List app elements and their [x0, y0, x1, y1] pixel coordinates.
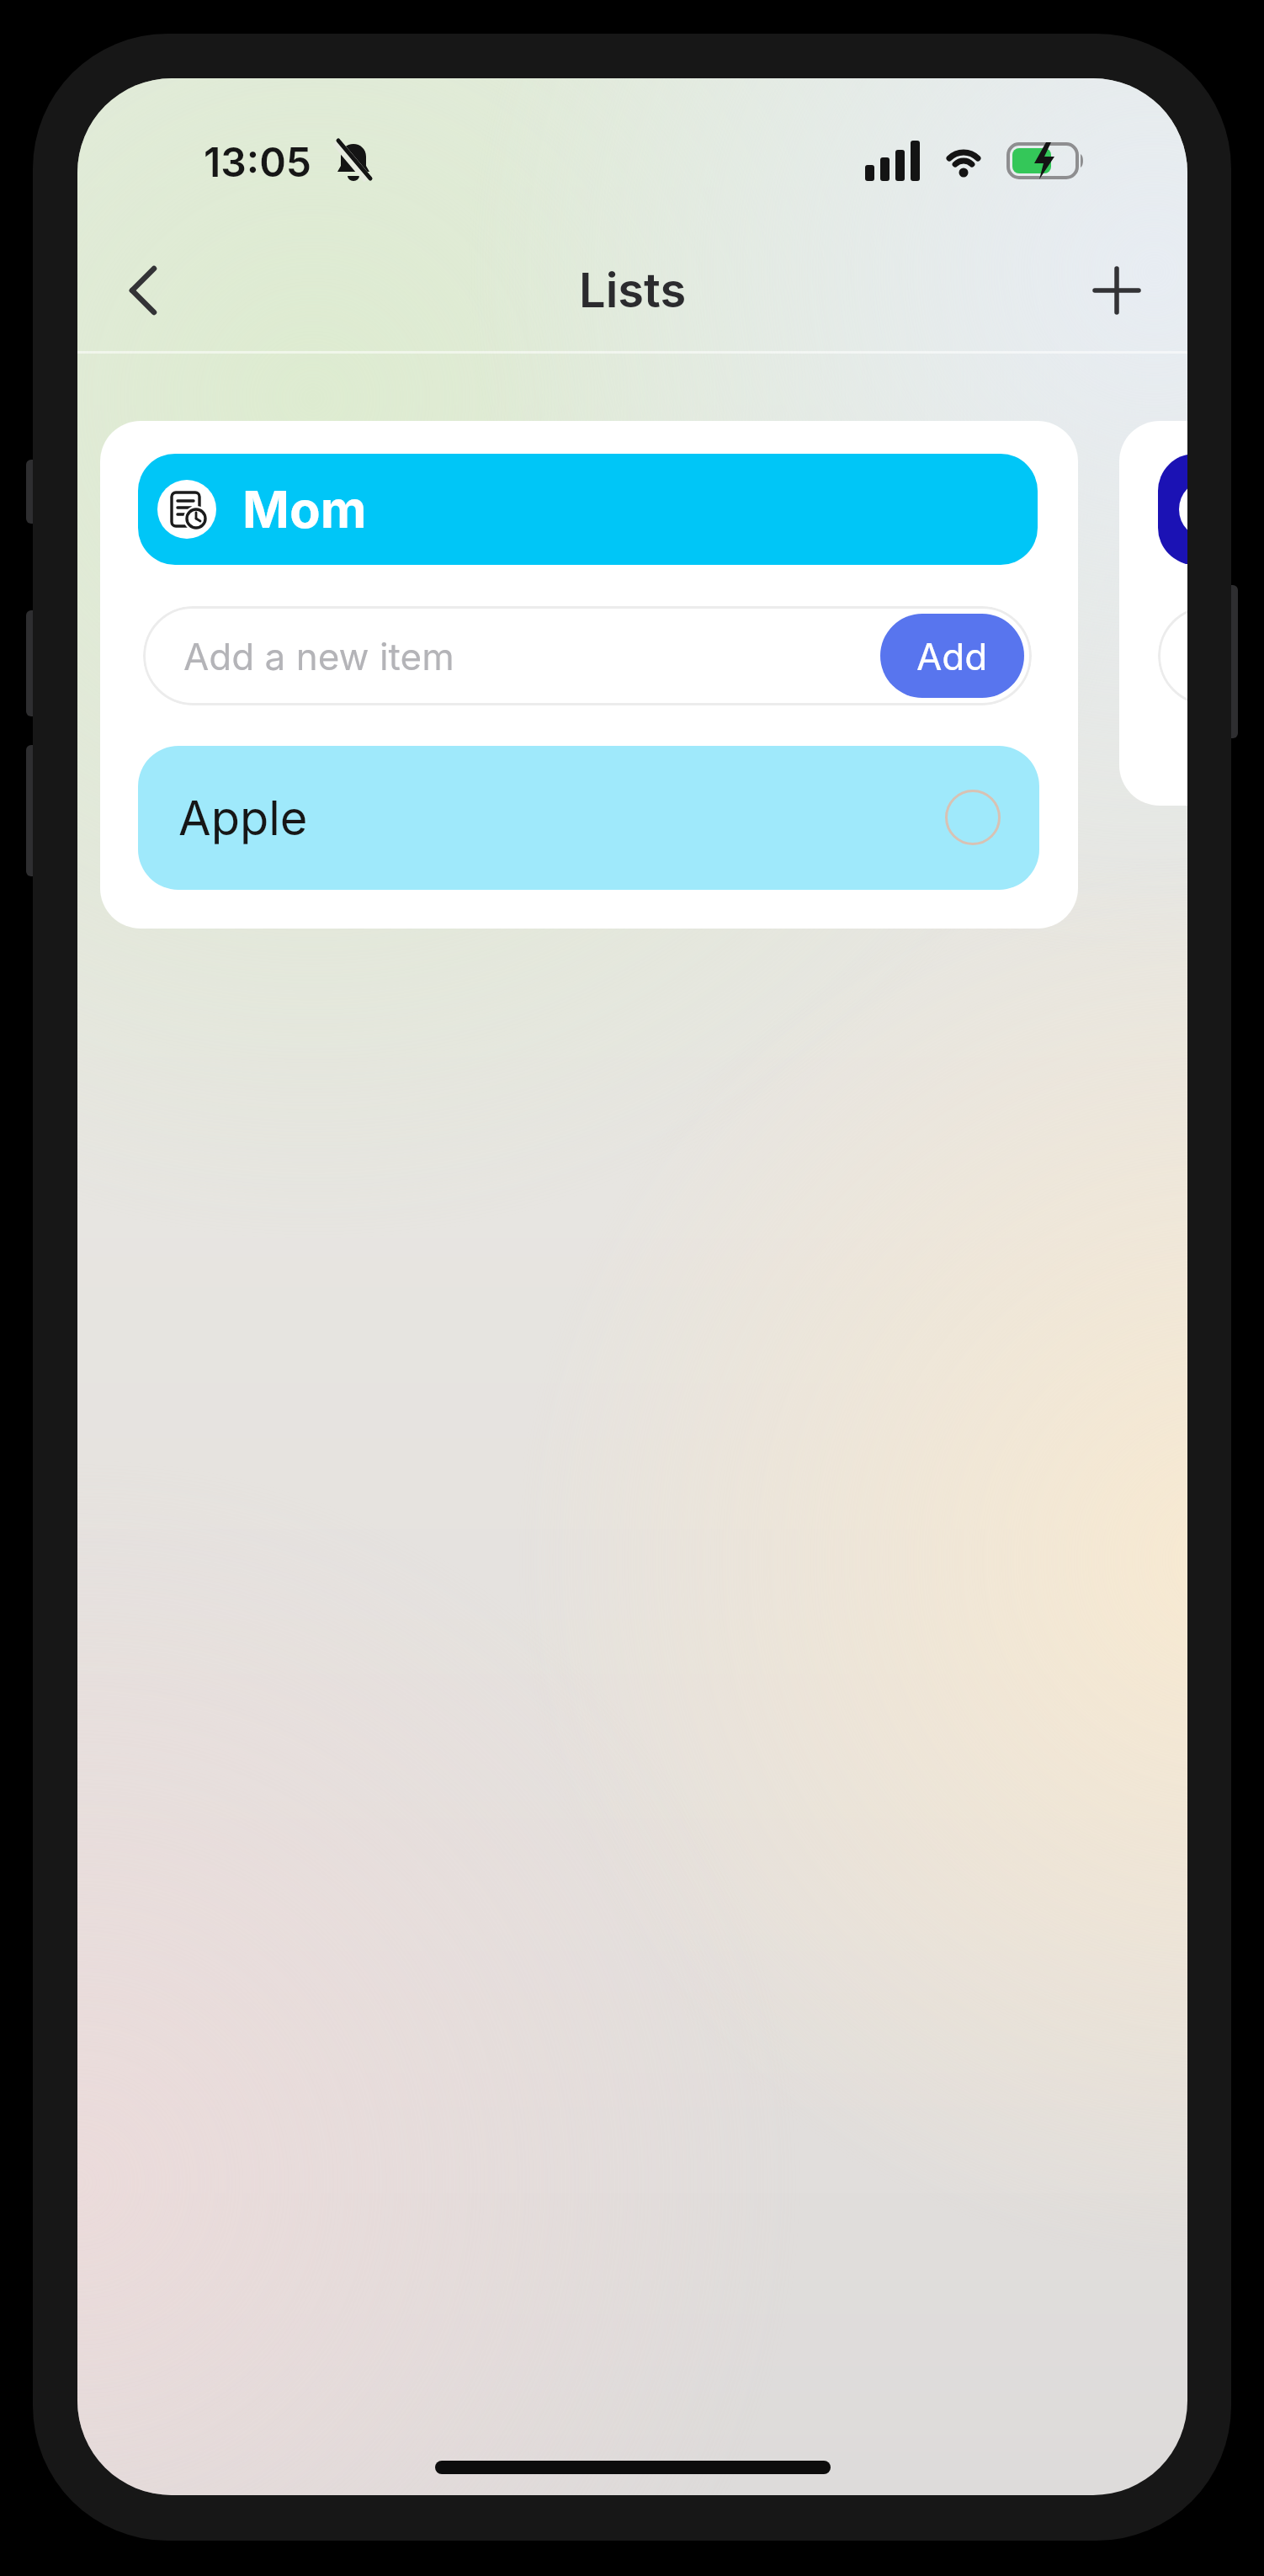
button[interactable]: Add: [880, 614, 1024, 698]
button[interactable]: Add a new item: [143, 606, 1032, 705]
button[interactable]: Apple: [138, 746, 1039, 890]
staticText: Mom: [242, 479, 367, 540]
button[interactable]: [1083, 257, 1150, 324]
button[interactable]: [109, 257, 177, 324]
staticText: Lists: [579, 262, 687, 319]
staticText: Apple: [178, 790, 308, 847]
button[interactable]: Mom: [138, 454, 1038, 565]
staticText: 13:05: [204, 137, 311, 186]
staticText: Add: [916, 634, 988, 679]
staticText: Add a new item: [183, 634, 454, 679]
